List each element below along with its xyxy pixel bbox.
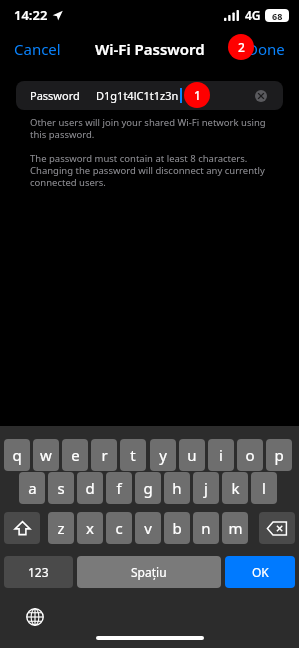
staticText: t	[130, 445, 136, 465]
staticText: u	[187, 445, 197, 465]
staticText: k	[231, 478, 240, 498]
button[interactable]: x	[77, 512, 103, 544]
staticText: c	[115, 518, 123, 538]
button[interactable]: Password	[16, 81, 283, 110]
button[interactable]: t	[120, 439, 146, 471]
button[interactable]: b	[164, 512, 190, 544]
staticText: 2	[238, 39, 245, 55]
button[interactable]: j	[193, 472, 219, 504]
button[interactable]: n	[193, 512, 219, 544]
button[interactable]: r	[91, 439, 117, 471]
staticText: j	[204, 478, 208, 498]
staticText: m	[228, 518, 243, 538]
staticText: y	[159, 445, 167, 465]
button[interactable]: c	[106, 512, 132, 544]
staticText: v	[144, 518, 152, 538]
staticText: Wi-Fi Password	[95, 39, 205, 59]
staticText: l	[262, 478, 266, 498]
button[interactable]: h	[164, 472, 190, 504]
staticText: g	[143, 478, 153, 498]
staticText: The password must contain at least 8 cha…	[30, 152, 275, 189]
button[interactable]: OK	[225, 556, 295, 588]
staticText: d	[85, 478, 95, 498]
button[interactable]: e	[62, 439, 88, 471]
button[interactable]: Cancel	[0, 33, 75, 65]
staticText: Spațiu	[131, 564, 167, 580]
button[interactable]: l	[251, 472, 277, 504]
staticText: Other users will join your shared Wi-Fi …	[30, 116, 275, 141]
button[interactable]: s	[48, 472, 74, 504]
staticText: s	[57, 478, 65, 498]
staticText: 1	[194, 87, 201, 103]
button[interactable]: u	[179, 439, 205, 471]
button[interactable]: Backspace	[259, 512, 295, 544]
button[interactable]: Shift	[4, 512, 40, 544]
button[interactable]: d	[77, 472, 103, 504]
staticText: 4G	[245, 7, 261, 23]
staticText: D1g1t4lC1t1z3n	[96, 88, 179, 103]
staticText: n	[201, 518, 211, 538]
staticText: z	[57, 518, 65, 538]
button[interactable]: v	[135, 512, 161, 544]
button[interactable]: g	[135, 472, 161, 504]
staticText: Cancel	[14, 39, 61, 59]
button[interactable]: a	[19, 472, 45, 504]
staticText: 123	[28, 564, 49, 580]
staticText: OK	[252, 564, 269, 580]
staticText: o	[245, 445, 255, 465]
button[interactable]: Spațiu	[77, 556, 221, 588]
button[interactable]: w	[33, 439, 59, 471]
button[interactable]: p	[266, 439, 292, 471]
staticText: i	[219, 445, 223, 465]
staticText: x	[86, 518, 94, 538]
staticText: a	[28, 478, 37, 498]
staticText: r	[101, 445, 108, 465]
staticText: p	[274, 445, 284, 465]
button[interactable]: Done	[233, 33, 299, 65]
button[interactable]: o	[237, 439, 263, 471]
staticText: w	[40, 445, 52, 465]
button[interactable]: z	[48, 512, 74, 544]
staticText: 14:22	[14, 6, 48, 24]
button[interactable]: m	[222, 512, 248, 544]
staticText: b	[172, 518, 182, 538]
button[interactable]: Clear text	[253, 88, 269, 104]
staticText: q	[12, 445, 22, 465]
button[interactable]: y	[150, 439, 176, 471]
staticText: h	[172, 478, 182, 498]
staticText: e	[71, 445, 80, 465]
staticText: 68	[272, 10, 283, 22]
button[interactable]: q	[4, 439, 30, 471]
staticText: Done	[247, 39, 285, 59]
staticText: f	[116, 478, 122, 498]
button[interactable]: i	[208, 439, 234, 471]
button[interactable]: f	[106, 472, 132, 504]
button[interactable]: Change keyboard language	[21, 603, 49, 631]
button[interactable]: 123	[4, 556, 73, 588]
staticText: Password	[30, 88, 80, 103]
button[interactable]: k	[222, 472, 248, 504]
